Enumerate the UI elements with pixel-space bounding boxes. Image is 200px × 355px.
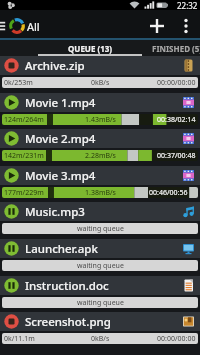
staticText: 0kB/s (91, 334, 110, 344)
staticText: Launcher.apk (25, 241, 98, 257)
staticText: 22:32 (177, 0, 198, 10)
staticText: All (27, 19, 40, 34)
staticText: FINISHED (5) (152, 43, 200, 54)
staticText: 0k/253m (4, 78, 33, 88)
button[interactable]: Movie 1.mp4 (0, 93, 200, 112)
staticText: Screenshot.png (25, 314, 111, 330)
staticText: 00:46/00:56 (149, 188, 188, 198)
staticText: QUEUE (13) (68, 43, 113, 54)
button[interactable]: Launcher.apk (0, 239, 200, 258)
staticText: Movie 2.mp4 (25, 131, 96, 147)
staticText: 0k/11.1m (4, 334, 35, 344)
button[interactable] (172, 12, 200, 40)
staticText: waiting queue (77, 298, 124, 308)
button[interactable]: Instruction.doc (0, 276, 200, 295)
button[interactable] (0, 10, 45, 38)
staticText: waiting queue (77, 261, 124, 271)
staticText: 177m/229m (4, 188, 44, 198)
staticText: Movie 1.mp4 (25, 95, 96, 111)
button[interactable]: Movie 3.mp4 (0, 166, 200, 185)
button[interactable]: Music.mp3 (0, 202, 200, 221)
staticText: 1.38mB/s (85, 188, 116, 198)
staticText: 00:37/00:48 (157, 151, 196, 161)
staticText: 00:00/00:00 (157, 334, 196, 344)
staticText: Movie 3.mp4 (25, 168, 96, 184)
staticText: 1.43mB/s (85, 115, 116, 125)
staticText: 00:00/00:00 (157, 78, 196, 88)
staticText: waiting queue (77, 224, 124, 234)
staticText: 2.28mB/s (85, 151, 116, 161)
staticText: Archive.zip (25, 58, 85, 74)
button[interactable]: FINISHED (5) (152, 40, 200, 56)
staticText: 0kB/s (91, 78, 110, 88)
button[interactable]: Archive.zip (0, 56, 200, 75)
button[interactable]: Screenshot.png (0, 312, 200, 331)
button[interactable]: QUEUE (13) (38, 40, 142, 56)
staticText: Music.mp3 (25, 204, 85, 220)
staticText: 00:38/02:14 (157, 115, 196, 125)
staticText: Instruction.doc (25, 278, 109, 294)
staticText: 124m/264m (4, 115, 44, 125)
button[interactable]: Movie 2.mp4 (0, 129, 200, 148)
staticText: 142m/231m (4, 151, 44, 161)
button[interactable] (144, 12, 170, 40)
